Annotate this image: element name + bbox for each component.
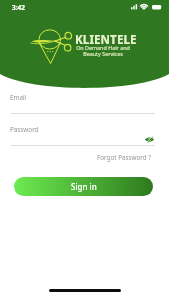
staticText: Password [10,125,39,134]
staticText: On Demand Hair and Beauty Services [73,44,133,57]
staticText: 3:42 [12,3,25,12]
staticText: KLIENTELE [75,32,137,48]
button[interactable]: Toggle password visibility [142,131,157,147]
staticText: Email [10,93,27,102]
button[interactable]: Forgot Password ? [97,153,152,162]
button[interactable]: Sign in [14,177,153,196]
staticText: Sign in [71,181,97,192]
